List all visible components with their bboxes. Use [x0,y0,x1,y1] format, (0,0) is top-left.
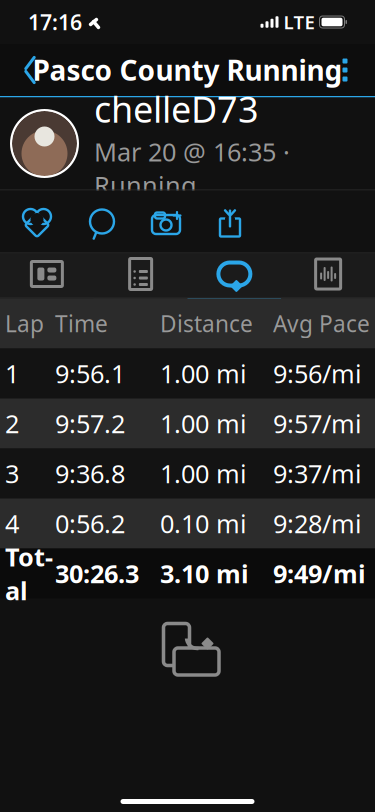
staticText: Time [55,308,108,338]
staticText: 9:37/mi [273,457,362,490]
staticText: 0:56.2 [55,507,125,540]
button[interactable]: Add photo [134,193,198,249]
staticText: 1 [5,357,19,390]
staticText: 1.00 mi [160,407,247,440]
button[interactable]: More options [319,47,371,93]
button[interactable]: Share [198,193,262,249]
button[interactable]: 2 [0,398,375,448]
staticText: 3 [5,457,19,490]
button[interactable]: Details [94,253,188,297]
staticText: 9:57.2 [55,407,125,440]
staticText: 9:57/mi [273,407,362,440]
staticText: 4 [5,507,19,540]
button[interactable]: 1 [0,348,375,398]
staticText: 9:28/mi [273,507,362,540]
staticText: chelleD73 [94,85,259,133]
staticText: 1.00 mi [160,357,247,390]
staticText: Mar 20 @ 16:35 · Running [94,135,290,202]
staticText: Lap [5,308,44,338]
staticText: 9:56/mi [273,357,362,390]
staticText: 0.10 mi [160,507,247,540]
staticText: 17:16 [28,8,82,36]
staticText: 9:36.8 [55,457,125,490]
staticText: 2 [5,407,19,440]
staticText: Distance [160,308,253,338]
button[interactable]: Comment [70,193,134,249]
staticText: 1.00 mi [160,457,247,490]
button[interactable]: 4 [0,498,375,548]
button[interactable]: Laps [187,253,281,297]
button[interactable]: 3 [0,448,375,498]
button[interactable]: Back [4,47,56,93]
staticText: 3.10 mi [160,557,249,590]
button[interactable]: Map [0,253,94,297]
button[interactable]: Charts [281,253,375,297]
button[interactable]: chelleD73 [0,97,375,189]
button[interactable]: Like [4,193,70,249]
staticText: Total [5,540,53,607]
staticText: Avg Pace [273,308,370,338]
staticText: 9:56.1 [55,357,125,390]
staticText: LTE [283,10,314,34]
staticText: 30:26.3 [55,557,139,590]
staticText: Pasco County Running [32,51,342,89]
staticText: 9:49/mi [273,557,366,590]
